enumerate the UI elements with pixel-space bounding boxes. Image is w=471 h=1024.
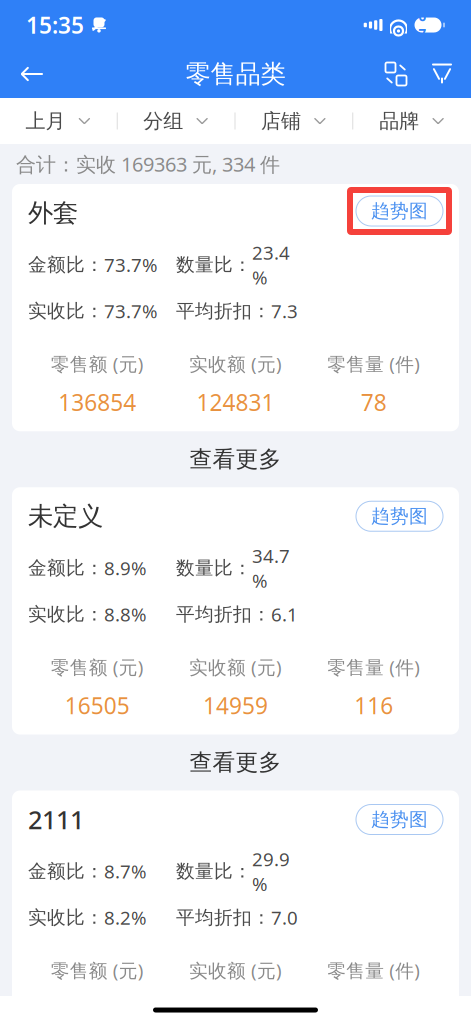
staticText: ： <box>85 253 104 276</box>
staticText: 73.7% <box>104 252 158 277</box>
staticText: 实收比 <box>28 603 85 626</box>
staticText: 34.7% <box>252 543 290 593</box>
staticText: 15:35 <box>26 10 84 40</box>
staticText: 实收额 (元) <box>189 655 282 679</box>
staticText: 67 <box>418 7 426 43</box>
staticText: ： <box>233 860 252 883</box>
staticText: 查看更多 <box>189 749 281 776</box>
staticText: ： <box>252 906 271 929</box>
staticText: 趋势图 <box>371 199 428 222</box>
staticText: 实收比 <box>28 299 85 322</box>
staticText: 73.7% <box>104 299 158 323</box>
staticText: 136854 <box>58 387 136 417</box>
staticText: 7.0 <box>271 905 298 930</box>
staticText: 合计：实收 169363 元, 334 件 <box>16 151 280 177</box>
staticText: 查看更多 <box>189 445 281 473</box>
staticText: 零售量 (件) <box>327 958 420 983</box>
staticText: 8.8% <box>104 602 147 627</box>
staticText: 平均折扣 <box>176 299 252 322</box>
button[interactable]: 返回 <box>6 50 58 98</box>
staticText: 品牌 <box>379 109 419 133</box>
staticText: 数量比 <box>176 557 233 579</box>
staticText: 趋势图 <box>371 808 428 831</box>
staticText: ： <box>233 253 252 276</box>
staticText: 零售品类 <box>185 58 285 89</box>
staticText: 23.4% <box>252 240 290 290</box>
staticText: 分组 <box>143 109 183 133</box>
staticText: 16505 <box>65 690 130 720</box>
button[interactable]: 筛选 <box>419 50 465 98</box>
staticText: ： <box>252 603 271 626</box>
staticText: 零售额 (元) <box>51 655 144 679</box>
staticText: 金额比 <box>28 253 85 276</box>
button[interactable]: 上月 <box>0 98 118 144</box>
staticText: 零售额 (元) <box>51 351 144 376</box>
staticText: 14959 <box>203 690 268 720</box>
staticText: 实收额 (元) <box>189 351 282 376</box>
staticText: 上月 <box>25 109 65 133</box>
button[interactable]: 切换视图 <box>373 50 419 98</box>
staticText: 平均折扣 <box>176 906 252 929</box>
staticText: 零售量 (件) <box>327 655 420 679</box>
staticText: 店铺 <box>261 109 301 133</box>
staticText: 124831 <box>196 387 274 417</box>
staticText: 8.2% <box>104 905 147 930</box>
staticText: 金额比 <box>28 557 85 579</box>
staticText: 零售量 (件) <box>327 351 420 376</box>
staticText: 数量比 <box>176 253 233 276</box>
button[interactable]: 趋势图 <box>356 501 443 531</box>
staticText: ： <box>85 906 104 929</box>
staticText: 8.7% <box>104 859 147 884</box>
staticText: 6.1 <box>271 602 298 627</box>
staticText: 外套 <box>28 197 78 228</box>
button[interactable]: 查看更多 <box>0 734 471 790</box>
staticText: 7.3 <box>271 299 298 323</box>
button[interactable]: 店铺 <box>235 98 353 144</box>
staticText: 实收比 <box>28 906 85 929</box>
staticText: 8.9% <box>104 556 147 580</box>
staticText: 实收额 (元) <box>189 958 282 983</box>
staticText: 趋势图 <box>371 505 428 528</box>
staticText: 零售额 (元) <box>51 958 144 983</box>
staticText: ： <box>85 299 104 322</box>
staticText: 平均折扣 <box>176 603 252 626</box>
button[interactable]: 查看更多 <box>0 431 471 487</box>
staticText: 2111 <box>28 803 84 836</box>
button[interactable]: 分组 <box>118 98 236 144</box>
button[interactable]: 趋势图 <box>356 196 443 226</box>
staticText: 13819 <box>203 994 268 1024</box>
staticText: ： <box>233 557 252 579</box>
staticText: 金额比 <box>28 860 85 883</box>
staticText: 29.9% <box>252 846 290 896</box>
staticText: ： <box>85 557 104 579</box>
staticText: 数量比 <box>176 860 233 883</box>
staticText: 78 <box>361 387 387 417</box>
button[interactable]: 趋势图 <box>356 804 443 834</box>
staticText: ： <box>85 860 104 883</box>
staticText: 未定义 <box>28 501 103 532</box>
staticText: ： <box>85 603 104 626</box>
staticText: ： <box>252 299 271 322</box>
staticText: 116 <box>354 690 393 720</box>
button[interactable]: 品牌 <box>353 98 471 144</box>
